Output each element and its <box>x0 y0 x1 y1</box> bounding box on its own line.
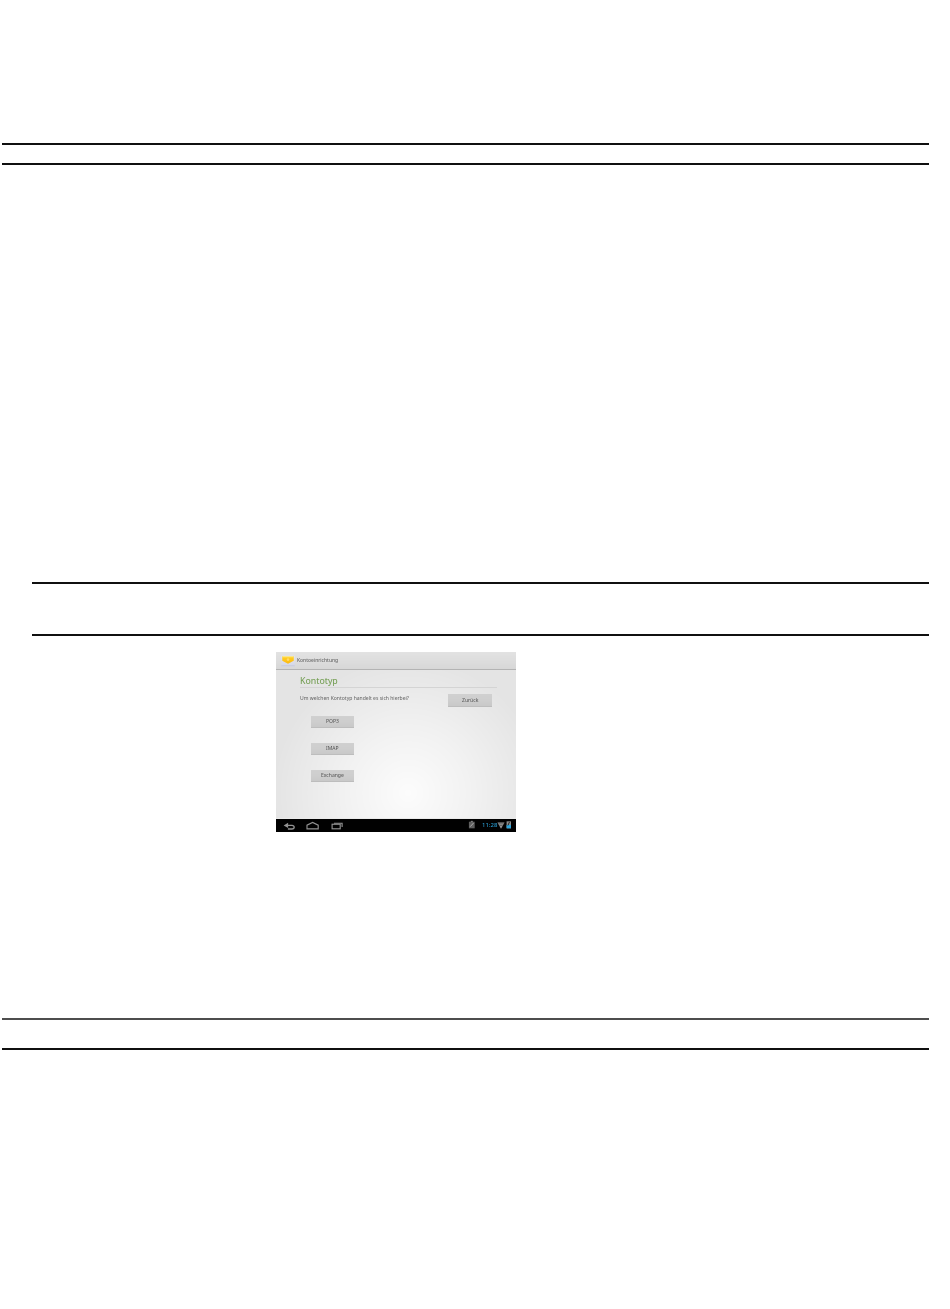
other: Kontoeinrichtung <box>281 655 295 667</box>
button[interactable]: IMAP <box>311 743 354 755</box>
staticText: Kontotyp <box>300 675 338 687</box>
staticText: Zurück <box>462 697 479 704</box>
button[interactable]: POP3 <box>311 716 354 728</box>
button[interactable]: Home <box>302 819 323 832</box>
other: System navigation <box>276 819 516 832</box>
staticText: Kontoeinrichtung <box>297 657 339 664</box>
staticText: Exchange <box>321 772 344 779</box>
button[interactable]: Zurück <box>448 694 492 707</box>
staticText: POP3 <box>326 718 339 725</box>
button[interactable]: Back <box>279 819 300 832</box>
button[interactable]: Exchange <box>311 770 354 782</box>
button[interactable]: Kontoeinrichtung <box>276 652 516 669</box>
staticText: IMAP <box>326 745 339 752</box>
button[interactable]: Recent apps <box>327 819 348 832</box>
staticText: 11:28 <box>482 821 498 829</box>
staticText: Um welchen Kontotyp handelt es sich hier… <box>300 695 410 702</box>
